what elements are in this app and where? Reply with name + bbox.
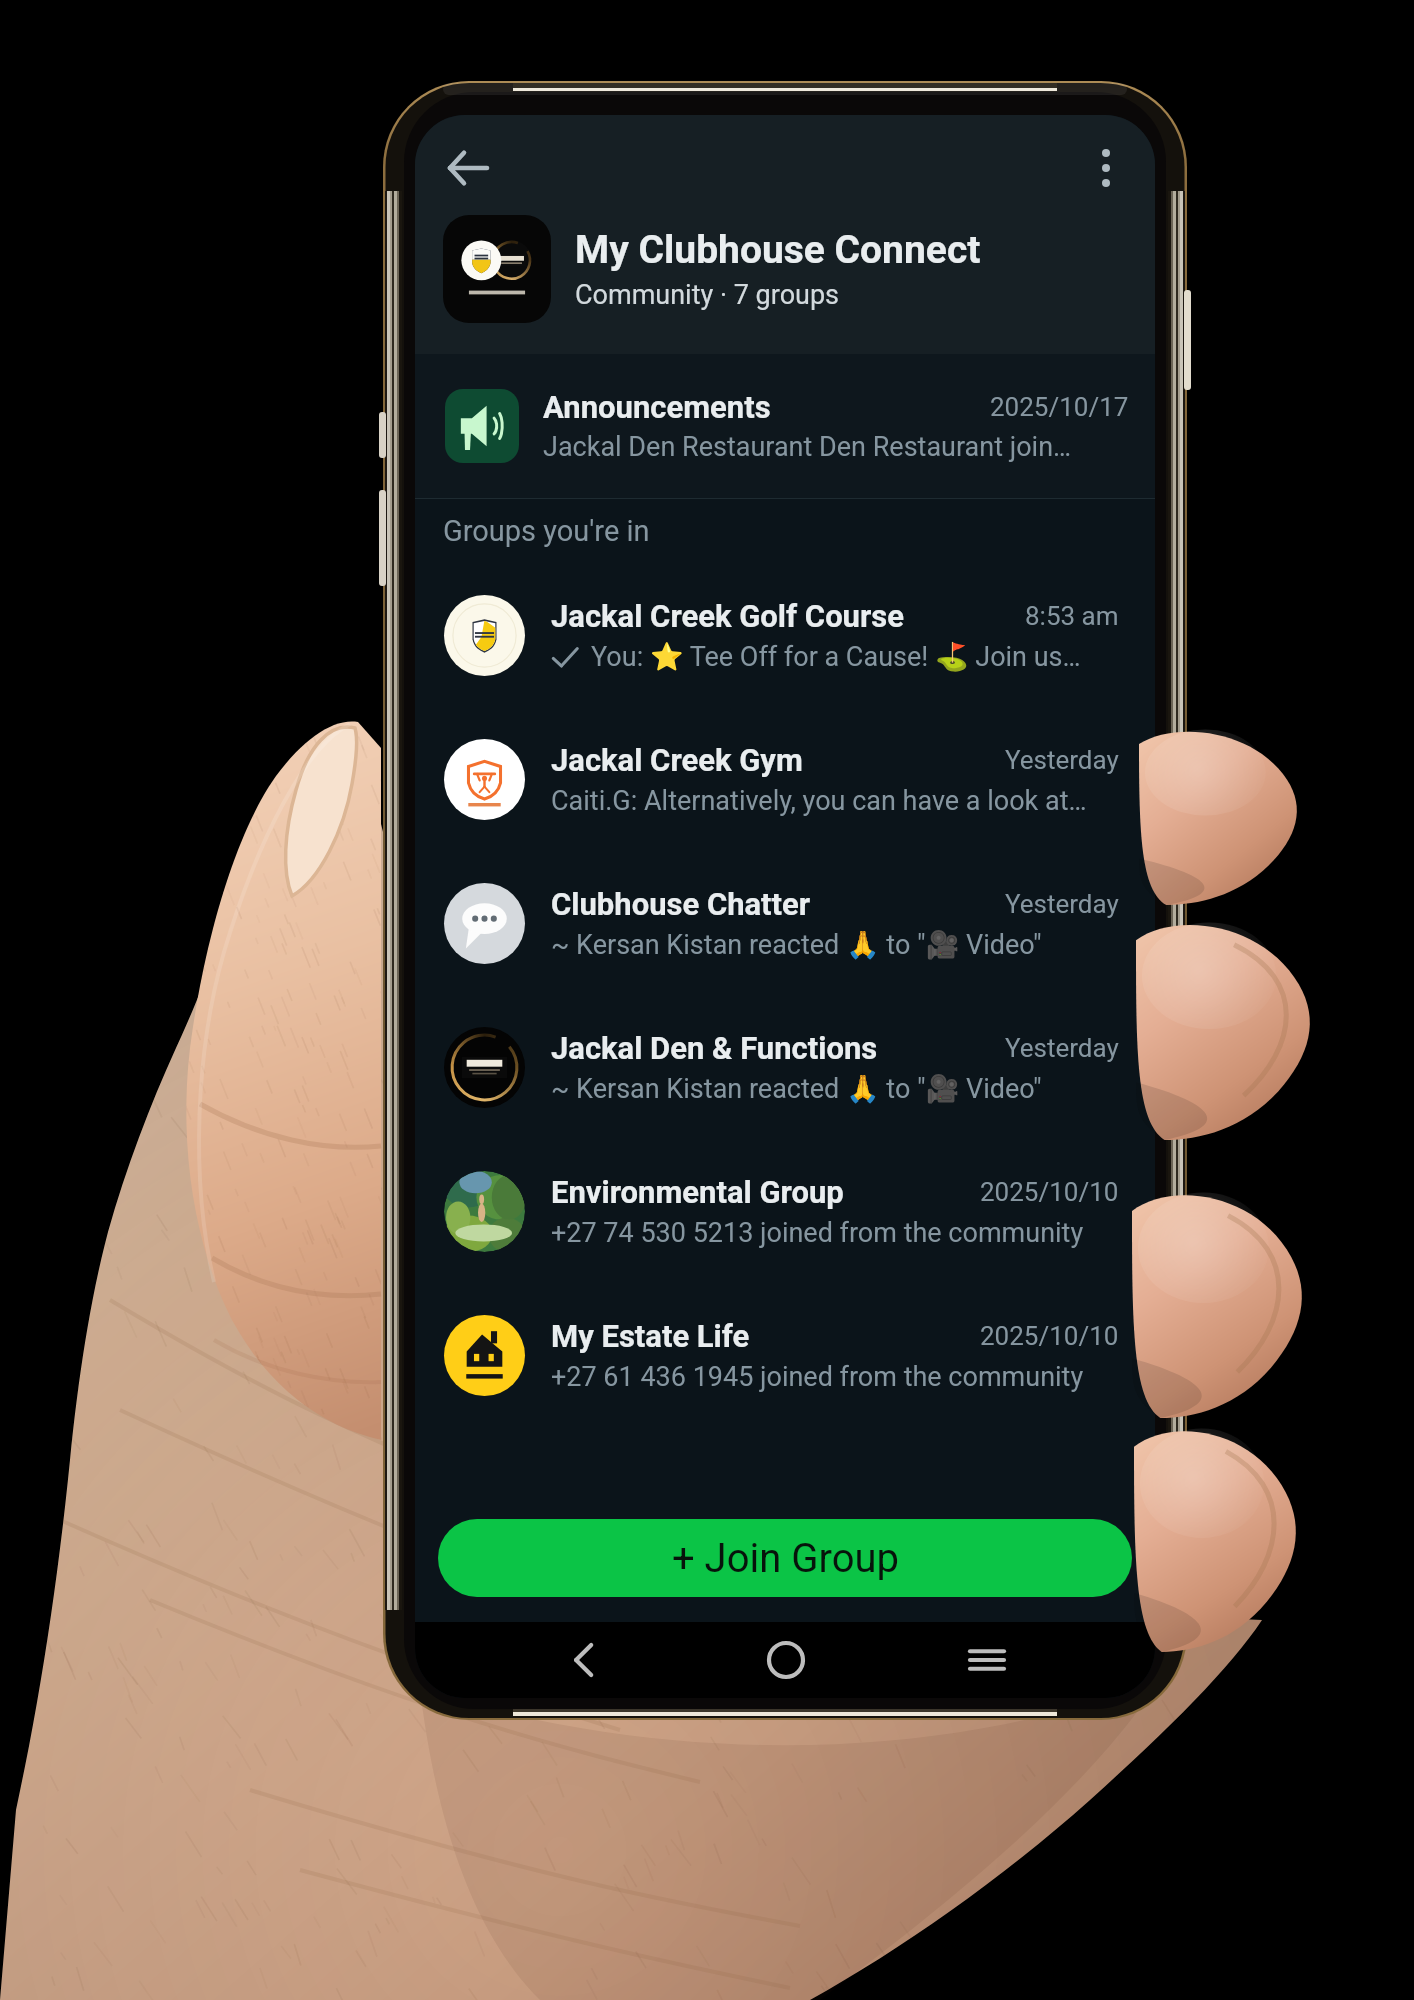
staticText: ~ Kersan Kistan reacted 🙏 to "🎥 Video" <box>551 1073 1042 1105</box>
button[interactable]: Environmental Group <box>415 1139 1155 1283</box>
staticText: Jackal Den Restaurant Den Restaurant joi… <box>543 431 1072 463</box>
button[interactable]: Clubhouse Chatter <box>415 851 1155 995</box>
staticText: Jackal Creek Golf Course <box>551 598 905 634</box>
staticText: You: ⭐ Tee Off for a Cause! ⛳ Join us… <box>591 641 1081 673</box>
button[interactable]: + Join Group <box>438 1519 1132 1597</box>
button[interactable]: Jackal Creek Golf Course <box>415 563 1155 707</box>
staticText: Caiti.G: Alternatively, you can have a l… <box>551 785 1087 817</box>
button[interactable]: Back <box>483 1622 685 1698</box>
button[interactable]: My Estate Life <box>415 1283 1155 1427</box>
staticText: Yesterday <box>1005 745 1119 775</box>
staticText: +27 61 436 1945 joined from the communit… <box>551 1361 1084 1393</box>
button[interactable]: Recent apps <box>886 1622 1087 1698</box>
staticText: +27 74 530 5213 joined from the communit… <box>551 1217 1084 1249</box>
button[interactable]: Jackal Creek Gym <box>415 707 1155 851</box>
button[interactable]: Home <box>685 1622 886 1698</box>
staticText: Clubhouse Chatter <box>551 886 811 922</box>
button[interactable]: My Clubhouse Connect <box>443 215 981 323</box>
staticText: + Join Group <box>672 1535 899 1582</box>
button[interactable]: Announcements <box>415 354 1155 498</box>
button[interactable]: Back <box>435 135 501 201</box>
staticText: 2025/10/10 <box>980 1177 1119 1207</box>
staticText: 2025/10/17 <box>990 392 1129 422</box>
staticText: Jackal Creek Gym <box>551 742 803 778</box>
staticText: Environmental Group <box>551 1174 844 1210</box>
staticText: 2025/10/10 <box>980 1321 1119 1351</box>
staticText: My Clubhouse Connect <box>575 227 981 273</box>
button[interactable]: Jackal Den & Functions <box>415 995 1155 1139</box>
staticText: 8:53 am <box>1025 601 1119 631</box>
staticText: Groups you're in <box>443 514 650 548</box>
staticText: Community · 7 groups <box>575 279 840 311</box>
staticText: Yesterday <box>1005 889 1119 919</box>
staticText: Yesterday <box>1005 1033 1119 1063</box>
staticText: My Estate Life <box>551 1318 750 1354</box>
staticText: Announcements <box>543 389 771 425</box>
button[interactable]: More options <box>1073 135 1139 201</box>
staticText: Jackal Den & Functions <box>551 1030 878 1066</box>
staticText: ~ Kersan Kistan reacted 🙏 to "🎥 Video" <box>551 929 1042 961</box>
